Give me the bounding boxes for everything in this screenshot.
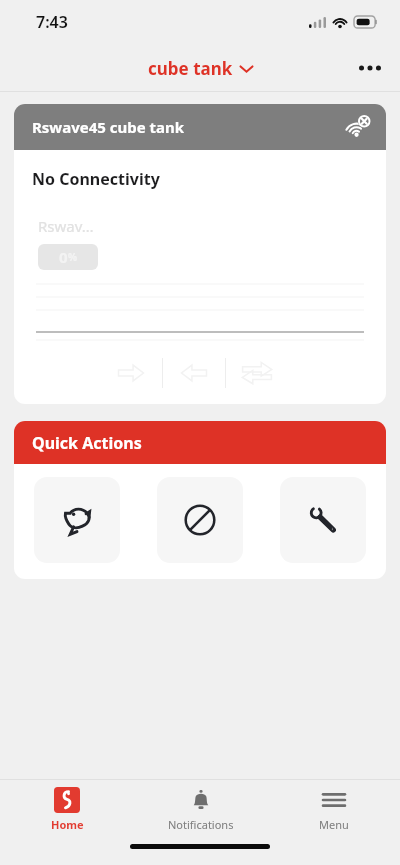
button[interactable]: Feed (34, 477, 120, 563)
button[interactable]: Transfer (226, 353, 288, 393)
staticText: Notifications (168, 817, 234, 832)
button[interactable]: Home (0, 780, 134, 832)
staticText: Rswave45 cube tank (32, 117, 185, 137)
staticText: Quick Actions (32, 432, 142, 454)
button[interactable]: Stop (157, 477, 243, 563)
button[interactable]: More options (352, 50, 388, 86)
button[interactable]: Notifications (134, 780, 267, 832)
button[interactable]: Maintenance (280, 477, 366, 563)
staticText: 7:43 (36, 11, 68, 33)
button[interactable]: Menu (267, 780, 400, 832)
staticText: No Connectivity (32, 168, 160, 190)
other: No connectivity (344, 113, 372, 141)
staticText: % (68, 250, 78, 264)
button[interactable]: cube tank (140, 53, 261, 84)
button[interactable]: Rswave45 cube tank (14, 104, 386, 404)
staticText: cube tank (148, 57, 233, 80)
staticText: Home (51, 817, 84, 832)
staticText: Rswav… (38, 216, 94, 236)
staticText: Menu (319, 817, 349, 832)
staticText: 0 (59, 247, 68, 267)
